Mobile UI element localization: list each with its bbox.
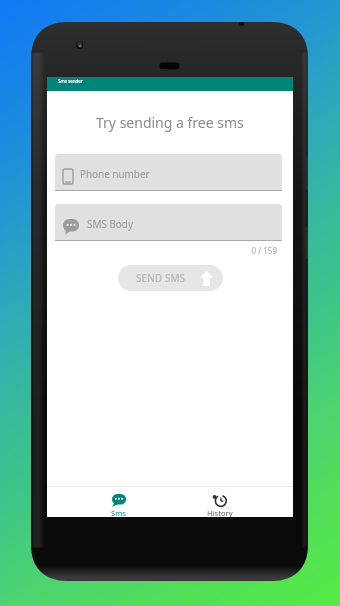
staticText: SEND SMS	[136, 272, 186, 285]
staticText: Try sending a free sms	[96, 113, 244, 132]
button[interactable]: Sms	[68, 487, 169, 517]
button[interactable]: SMS Body	[55, 204, 282, 241]
button[interactable]: History	[169, 487, 270, 517]
staticText: SMS Body	[87, 217, 133, 230]
staticText: Phone number	[80, 167, 150, 180]
button[interactable]: Phone number	[55, 154, 282, 191]
staticText: History	[207, 508, 233, 517]
staticText: 0 / 159	[47, 245, 277, 256]
staticText: Sms	[111, 508, 126, 517]
staticText: Sms sender	[58, 78, 83, 84]
button[interactable]: SEND SMS	[118, 265, 223, 291]
